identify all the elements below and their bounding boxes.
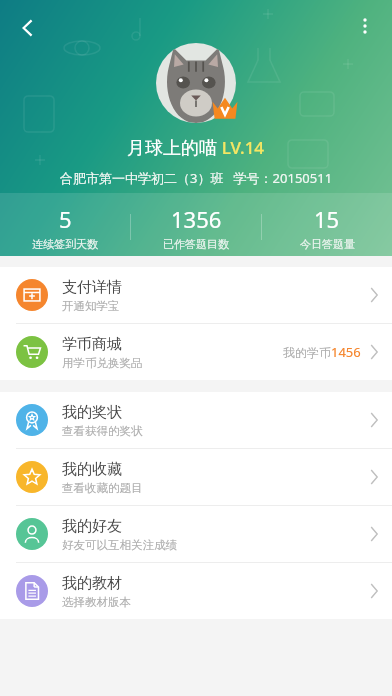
staticText: 用学币兑换奖品 — [62, 356, 143, 370]
staticText: 我的奖状 — [62, 403, 122, 422]
staticText: 支付详情 — [62, 278, 122, 297]
button[interactable]: Back — [6, 6, 50, 50]
button[interactable]: 支付详情 — [0, 267, 392, 323]
staticText: 查看获得的奖状 — [62, 424, 143, 438]
button[interactable]: 15 — [262, 204, 392, 251]
button[interactable]: 1356 — [131, 204, 261, 251]
staticText: 我的好友 — [62, 517, 122, 536]
staticText: 查看收藏的题目 — [62, 481, 143, 495]
button[interactable]: More options — [343, 4, 387, 48]
staticText: 合肥市第一中学初二（3）班 学号：20150511 — [60, 169, 333, 187]
staticText: 好友可以互相关注成绩 — [62, 538, 177, 552]
button[interactable]: 学币商城 — [0, 324, 392, 380]
button[interactable]: 5 — [0, 204, 130, 251]
staticText: 连续签到天数 — [32, 237, 98, 251]
staticText: 学币商城 — [62, 335, 122, 354]
staticText: 今日答题量 — [300, 237, 355, 251]
staticText: 已作答题目数 — [163, 237, 229, 251]
staticText: 15 — [314, 204, 340, 234]
staticText: 我的教材 — [62, 574, 122, 593]
staticText: 我的学币1456 — [283, 343, 361, 361]
button[interactable]: 我的好友 — [0, 506, 392, 562]
staticText: 1356 — [171, 204, 222, 234]
staticText: 开通知学宝 — [62, 299, 120, 313]
button[interactable]: 我的教材 — [0, 563, 392, 619]
button[interactable]: 我的收藏 — [0, 449, 392, 505]
staticText: 5 — [59, 204, 72, 234]
button[interactable]: Avatar — [156, 43, 236, 123]
button[interactable]: 我的奖状 — [0, 392, 392, 448]
staticText: 选择教材版本 — [62, 595, 131, 609]
staticText: 我的收藏 — [62, 460, 122, 479]
staticText: 月球上的喵 LV.14 — [127, 135, 265, 160]
